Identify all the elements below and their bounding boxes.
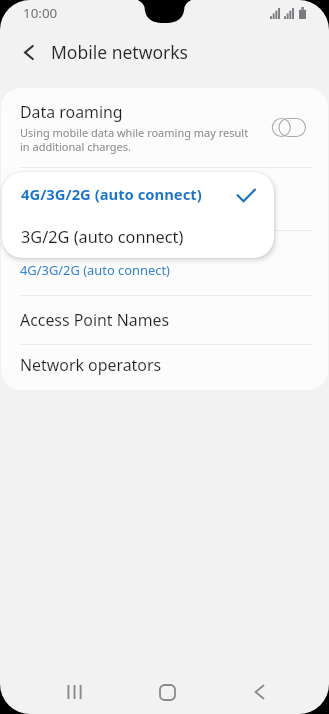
button[interactable]: Access Point Names <box>1 296 328 344</box>
staticText: Mobile data <box>20 176 109 198</box>
staticText: 4G/3G/2G (auto connect) <box>20 261 170 279</box>
staticText: Access Point Names <box>20 309 170 331</box>
button[interactable]: 4G/3G/2G (auto connect) <box>2 172 274 215</box>
button[interactable]: Navigate up <box>13 36 45 68</box>
button[interactable]: Mobile data <box>1 168 328 230</box>
button[interactable]: Network mode <box>1 231 328 295</box>
staticText: Mobile networks <box>51 40 188 64</box>
staticText: Network operators <box>20 354 162 376</box>
button[interactable]: Data roaming <box>1 88 328 167</box>
staticText: Network mode <box>20 239 132 261</box>
staticText: 4G/3G/2G (auto connect) <box>21 184 238 204</box>
staticText: 3G/2G (auto connect) <box>21 226 184 248</box>
staticText: 10:00 <box>23 4 58 22</box>
staticText: Using mobile data while roaming may resu… <box>20 125 253 154</box>
button[interactable]: Network operators <box>1 345 328 390</box>
staticText: Access data using mobile network <box>20 198 226 216</box>
button[interactable]: 3G/2G (auto connect) <box>2 215 274 258</box>
button[interactable]: Recent apps <box>28 670 121 714</box>
staticText: Data roaming <box>20 101 123 123</box>
button[interactable]: Home <box>121 670 213 714</box>
button[interactable]: Back <box>213 670 305 714</box>
